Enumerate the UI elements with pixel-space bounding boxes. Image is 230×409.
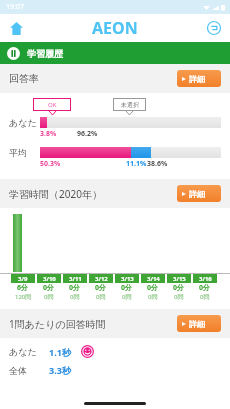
staticText: あなた (9, 346, 39, 357)
staticText: 0分 (121, 283, 133, 293)
staticText: 学習時間（2020年） (9, 187, 102, 201)
staticText: 詳細 (189, 319, 205, 329)
staticText: 6分 (17, 283, 29, 293)
staticText: 0分 (173, 283, 185, 293)
staticText: 3.8% (40, 129, 57, 139)
staticText: 0問 (70, 293, 80, 301)
staticText: 0分 (95, 283, 107, 293)
staticText: 1.1秒 (49, 346, 71, 358)
staticText: 3.3秒 (49, 364, 71, 376)
staticText: 38.6% (147, 159, 168, 169)
staticText: 0問 (174, 293, 184, 301)
staticText: 学習履歴 (27, 48, 63, 59)
staticText: 0問 (44, 293, 54, 301)
staticText: 詳細 (189, 74, 205, 84)
staticText: 0分 (43, 283, 55, 293)
staticText: 0分 (199, 283, 211, 293)
staticText: 50.3% (40, 159, 61, 169)
staticText: 96.2% (77, 129, 98, 139)
staticText: 3/9 (18, 275, 28, 283)
staticText: 3/13 (121, 275, 134, 283)
staticText: 0問 (96, 293, 106, 301)
staticText: 0分 (147, 283, 159, 293)
staticText: 0問 (122, 293, 132, 301)
staticText: 3/10 (43, 275, 56, 283)
button[interactable]: Back (204, 18, 224, 38)
button[interactable]: 詳細 (177, 185, 221, 202)
staticText: AEON (92, 17, 138, 39)
staticText: 19:07 (6, 2, 24, 12)
button[interactable]: Home (6, 18, 26, 38)
staticText: 11.1% (126, 159, 147, 169)
staticText: 120問 (15, 293, 32, 301)
staticText: 3/14 (147, 275, 160, 283)
staticText: 3/15 (173, 275, 186, 283)
staticText: OK (48, 101, 57, 109)
button[interactable]: 詳細 (177, 315, 221, 332)
staticText: 平均 (9, 147, 37, 158)
staticText: 詳細 (189, 189, 205, 199)
staticText: 3/16 (199, 275, 212, 283)
staticText: 未選択 (121, 101, 139, 109)
staticText: あなた (9, 117, 37, 128)
staticText: 全体 (9, 365, 39, 376)
staticText: 1問あたりの回答時間 (9, 317, 106, 331)
staticText: 3/11 (69, 275, 82, 283)
staticText: 0問 (148, 293, 158, 301)
staticText: 3/12 (95, 275, 108, 283)
staticText: 0問 (200, 293, 210, 301)
staticText: 0分 (69, 283, 81, 293)
button[interactable]: 詳細 (177, 70, 221, 87)
staticText: 回答率 (9, 72, 39, 85)
